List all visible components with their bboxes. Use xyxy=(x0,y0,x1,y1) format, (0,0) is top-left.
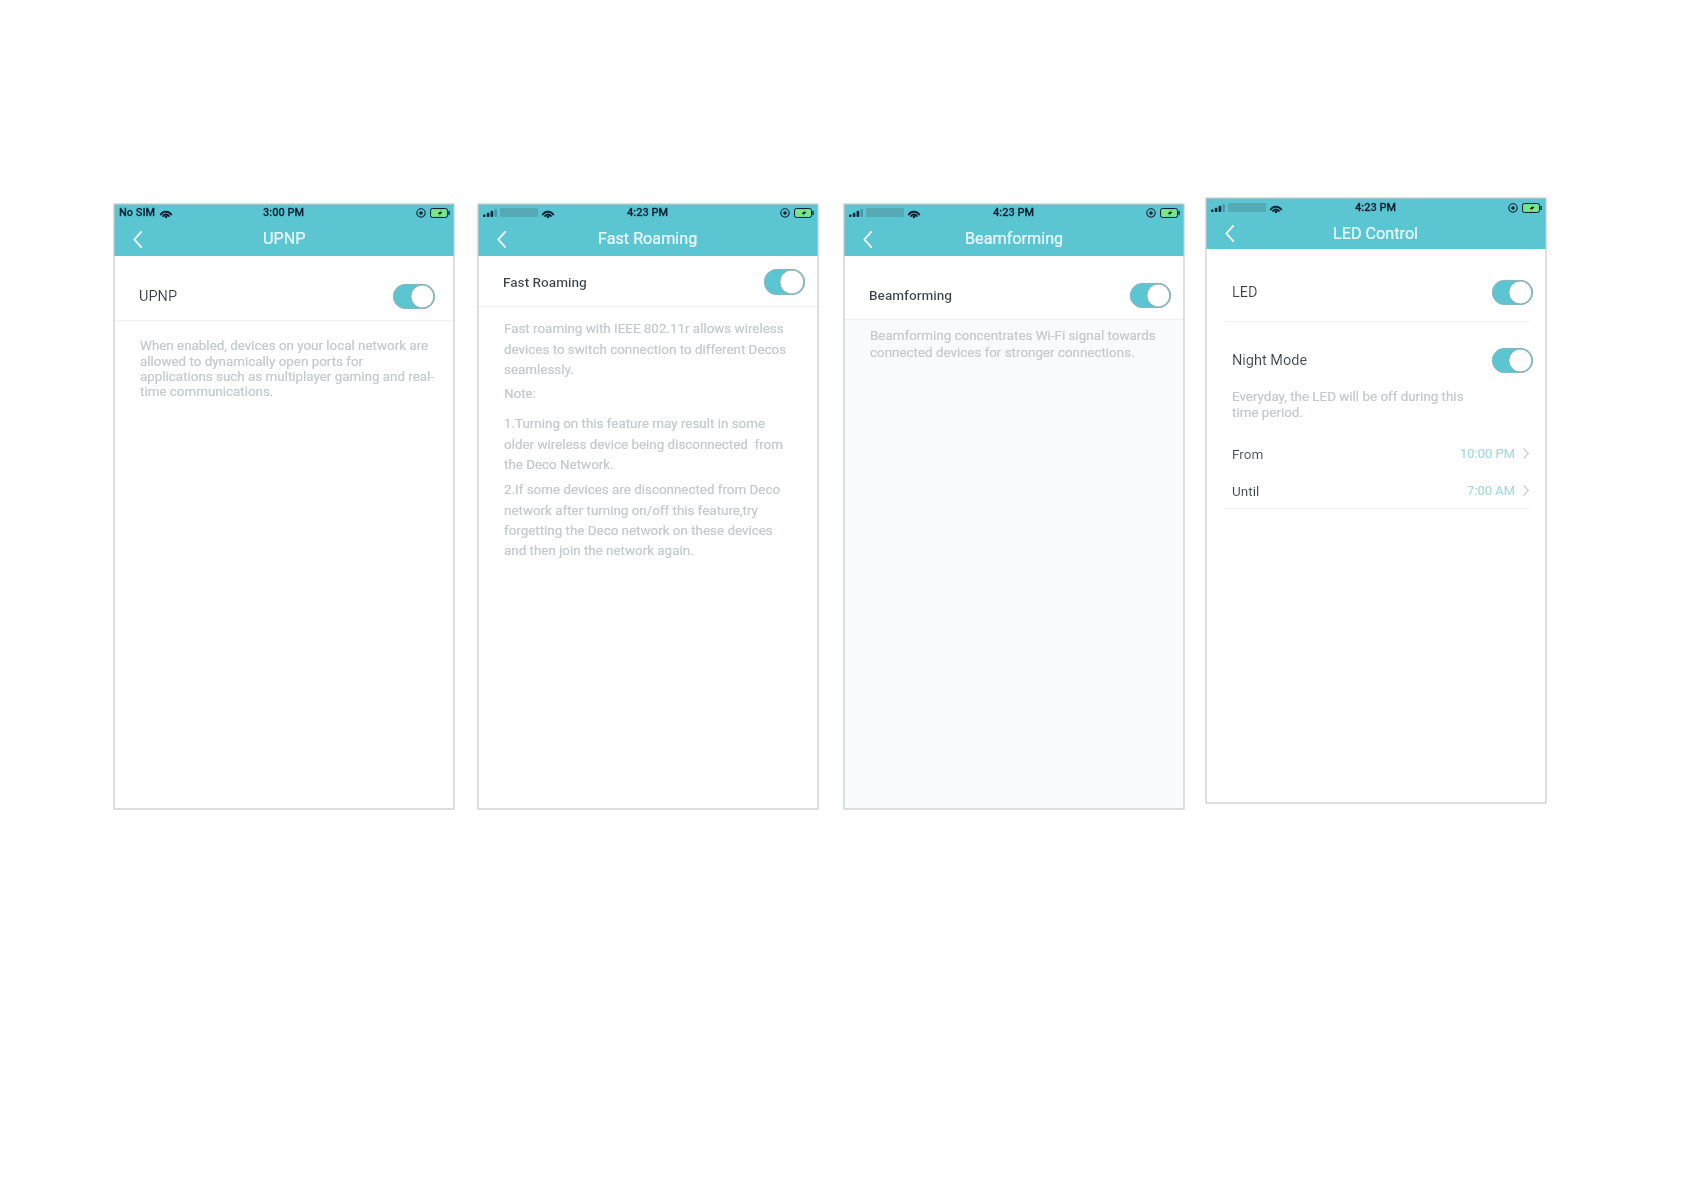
staticText: Night Mode xyxy=(1232,352,1308,369)
staticText: From xyxy=(1232,446,1264,462)
staticText: 2.If some devices are disconnected from … xyxy=(504,482,792,558)
button[interactable]: LED xyxy=(1206,264,1546,321)
button[interactable]: Fast Roaming xyxy=(478,261,818,303)
staticText: 4:23 PM xyxy=(993,206,1035,219)
staticText: No SIM xyxy=(119,206,156,219)
button[interactable]: Toggle switch xyxy=(764,269,805,295)
button[interactable]: Beamforming xyxy=(844,266,1184,324)
staticText: Note: xyxy=(504,386,792,402)
staticText: LED Control xyxy=(1333,224,1419,243)
button[interactable]: Back xyxy=(487,224,517,254)
button[interactable]: UPNP xyxy=(114,268,454,325)
button[interactable]: Back xyxy=(123,224,153,254)
staticText: LED xyxy=(1232,284,1258,301)
staticText: Beamforming xyxy=(965,229,1064,248)
staticText: 10:00 PM xyxy=(1460,446,1516,461)
staticText: 7:00 AM xyxy=(1467,483,1516,498)
staticText: UPNP xyxy=(263,229,306,248)
button[interactable]: Back xyxy=(853,224,883,254)
staticText: Fast Roaming xyxy=(598,229,698,248)
staticText: Everyday, the LED will be off during thi… xyxy=(1232,389,1472,420)
staticText: 4:23 PM xyxy=(627,206,669,219)
staticText: Until xyxy=(1232,483,1260,499)
button[interactable]: Toggle switch xyxy=(1130,283,1171,308)
staticText: UPNP xyxy=(139,288,178,305)
button[interactable]: Toggle switch xyxy=(1492,280,1533,305)
button[interactable]: Night Mode xyxy=(1206,336,1546,384)
staticText: 1.Turning on this feature may result in … xyxy=(504,416,792,472)
staticText: Fast Roaming xyxy=(503,274,587,290)
staticText: 4:23 PM xyxy=(1355,201,1397,214)
staticText: Beamforming concentrates Wi-Fi signal to… xyxy=(870,328,1167,360)
button[interactable]: Until xyxy=(1206,472,1546,509)
button[interactable]: From xyxy=(1206,435,1546,472)
staticText: 3:00 PM xyxy=(263,206,305,219)
staticText: Beamforming xyxy=(869,287,952,303)
staticText: When enabled, devices on your local netw… xyxy=(140,338,437,399)
button[interactable]: Back xyxy=(1215,218,1245,248)
button[interactable]: Toggle switch xyxy=(1492,348,1533,373)
button[interactable]: Toggle switch xyxy=(393,284,435,309)
staticText: Fast roaming with IEEE 802.11r allows wi… xyxy=(504,321,792,377)
